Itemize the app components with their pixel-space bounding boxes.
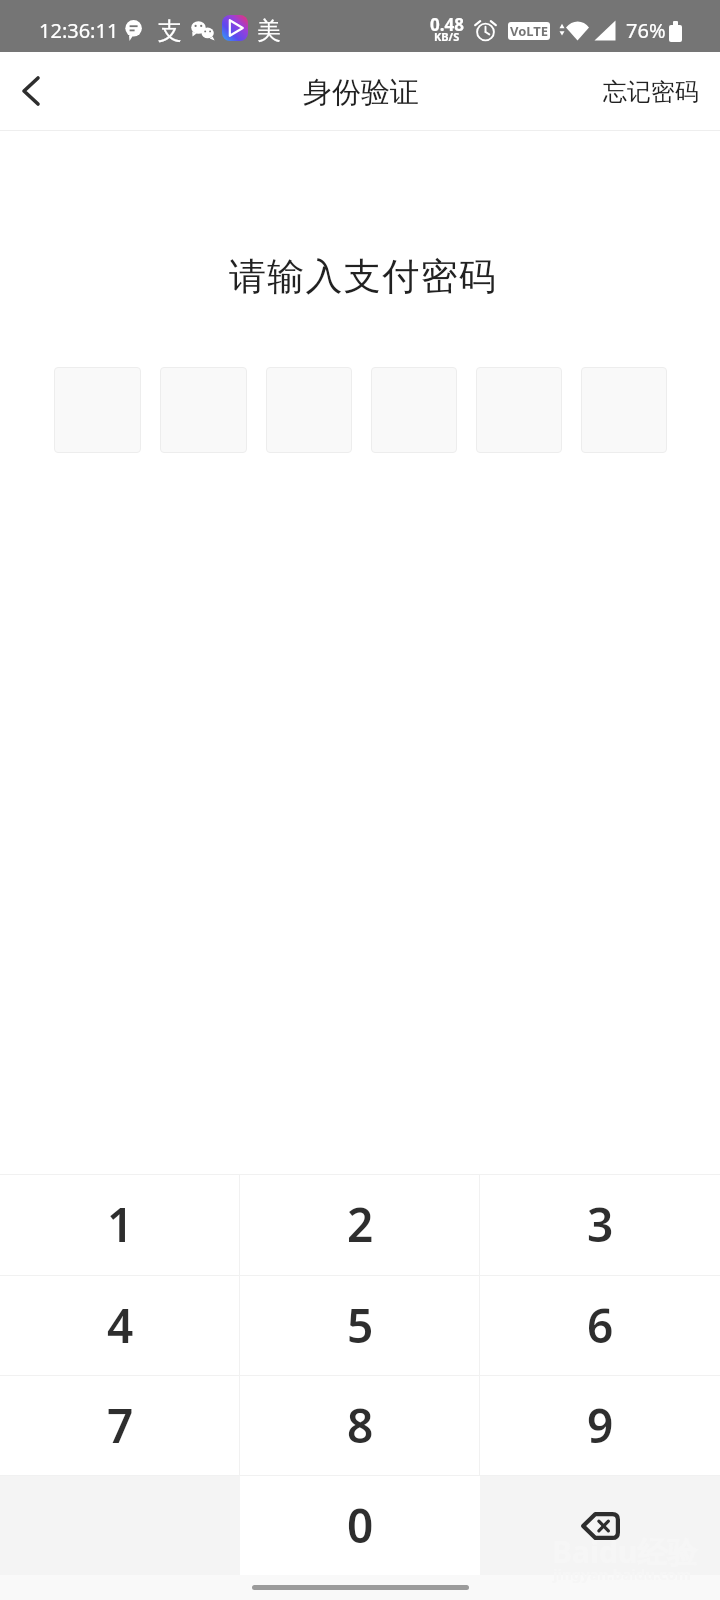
staticText: VoLTE <box>510 22 549 40</box>
staticText: 身份验证 <box>303 74 419 111</box>
button[interactable]: 0 <box>240 1476 480 1575</box>
button[interactable]: Backspace <box>480 1476 720 1575</box>
staticText: 支 <box>158 16 182 46</box>
button[interactable]: 7 <box>0 1376 240 1475</box>
staticText: 7 <box>107 1394 134 1457</box>
staticText: 忘记密码 <box>603 77 699 107</box>
button[interactable]: 3 <box>480 1175 720 1274</box>
button[interactable]: 8 <box>240 1376 480 1475</box>
staticText: 4 <box>107 1294 134 1357</box>
staticText: 9 <box>587 1394 614 1457</box>
staticText: 6 <box>587 1294 614 1357</box>
button[interactable]: 忘记密码 <box>579 52 720 130</box>
staticText: 0 <box>347 1494 374 1557</box>
staticText: 76% <box>626 17 666 44</box>
staticText: 美 <box>257 16 281 46</box>
button[interactable]: Back <box>0 52 62 130</box>
button[interactable]: 5 <box>240 1276 480 1375</box>
button[interactable]: 4 <box>0 1276 240 1375</box>
staticText: 5 <box>347 1294 374 1357</box>
staticText: 8 <box>347 1394 374 1457</box>
staticText: KB/S <box>434 29 460 44</box>
staticText: 2 <box>347 1193 374 1256</box>
staticText: 1 <box>107 1193 134 1256</box>
staticText: 请输入支付密码 <box>3 253 720 300</box>
button[interactable]: 6 <box>480 1276 720 1375</box>
staticText: 12:36:11 <box>39 17 119 44</box>
staticText: 0.48 <box>430 13 464 36</box>
staticText: 3 <box>587 1193 614 1256</box>
staticText: Baidu经验 <box>552 1531 698 1572</box>
button[interactable]: 1 <box>0 1175 240 1274</box>
button[interactable]: 9 <box>480 1376 720 1475</box>
button[interactable]: 2 <box>240 1175 480 1274</box>
